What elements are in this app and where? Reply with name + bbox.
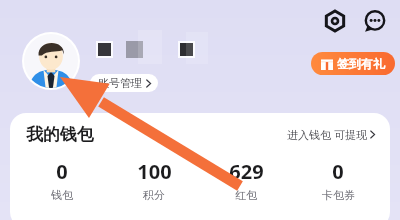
staticText: 红包 [235, 188, 257, 202]
button[interactable]: 签到有礼 [311, 52, 395, 75]
button[interactable]: Messages [360, 6, 390, 36]
staticText: 账号管理 [98, 76, 142, 90]
button[interactable]: 0 [16, 158, 108, 202]
staticText: 629 [229, 158, 264, 185]
button[interactable]: Profile avatar [22, 32, 80, 90]
staticText: 100 [137, 158, 172, 185]
staticText: 签到有礼 [337, 56, 385, 71]
staticText: 卡包券 [322, 188, 355, 202]
button[interactable]: Scan [320, 6, 350, 36]
staticText: 0 [332, 158, 344, 185]
staticText: 钱包 [51, 188, 73, 202]
button[interactable]: 0 [292, 158, 384, 202]
staticText: 进入钱包 可提现 [287, 127, 367, 142]
button[interactable]: 账号管理 [90, 74, 158, 92]
staticText: 0 [56, 158, 68, 185]
button[interactable]: 进入钱包 可提现 [287, 127, 376, 142]
staticText: 积分 [143, 188, 165, 202]
button[interactable]: 100 [108, 158, 200, 202]
staticText: 我的钱包 [26, 124, 94, 145]
button[interactable]: 629 [200, 158, 292, 202]
